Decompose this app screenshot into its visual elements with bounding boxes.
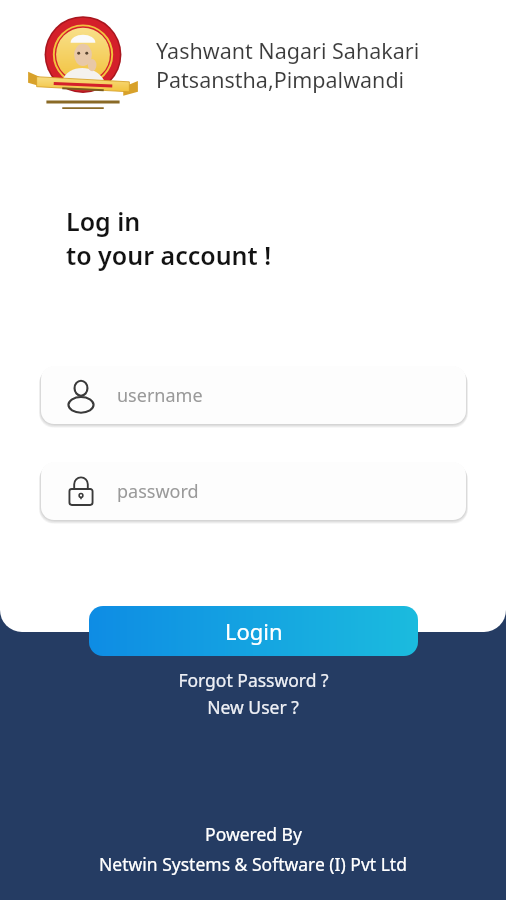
staticText: New User ? bbox=[207, 695, 299, 719]
button[interactable]: New User ? bbox=[0, 693, 506, 720]
staticText: Log in bbox=[66, 204, 141, 238]
button[interactable]: Username bbox=[41, 366, 466, 424]
other: Password bbox=[64, 474, 98, 508]
staticText: username bbox=[117, 383, 203, 408]
staticText: Powered By bbox=[205, 822, 302, 846]
staticText: Forgot Password ? bbox=[178, 668, 329, 692]
staticText: Login bbox=[225, 616, 283, 646]
staticText: password bbox=[117, 479, 199, 504]
button[interactable]: Password bbox=[41, 462, 466, 520]
staticText: to your account ! bbox=[66, 238, 272, 272]
staticText: Yashwant Nagari Sahakari bbox=[156, 36, 420, 65]
button[interactable]: Login bbox=[89, 606, 418, 656]
staticText: Netwin Systems & Software (I) Pvt Ltd bbox=[99, 852, 407, 876]
button[interactable]: Forgot Password ? bbox=[0, 666, 506, 693]
other: Username bbox=[64, 378, 98, 412]
other: Institution logo bbox=[22, 13, 144, 117]
staticText: Patsanstha,Pimpalwandi bbox=[156, 65, 405, 94]
